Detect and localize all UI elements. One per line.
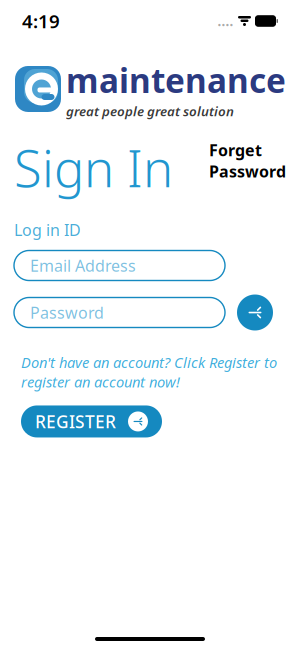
staticText: Email Address xyxy=(30,255,136,276)
staticText: .... xyxy=(217,12,233,30)
staticText: maintenance xyxy=(66,58,286,102)
button[interactable]: Email Address xyxy=(14,250,225,280)
staticText: Password xyxy=(30,302,104,323)
button[interactable]: Password xyxy=(14,297,225,327)
button[interactable]: REGISTER xyxy=(21,405,162,437)
button[interactable]: Forget Password xyxy=(209,139,286,196)
button[interactable]: Sign In xyxy=(237,294,273,330)
staticText: Don't have an account? Click Register to… xyxy=(21,352,277,391)
staticText: 4:19 xyxy=(22,9,60,33)
staticText: Sign In xyxy=(14,134,173,201)
staticText: great people great solution xyxy=(66,102,234,120)
staticText: Log in ID xyxy=(14,219,81,240)
staticText: Forget Password xyxy=(209,139,286,182)
staticText: REGISTER xyxy=(35,410,116,433)
